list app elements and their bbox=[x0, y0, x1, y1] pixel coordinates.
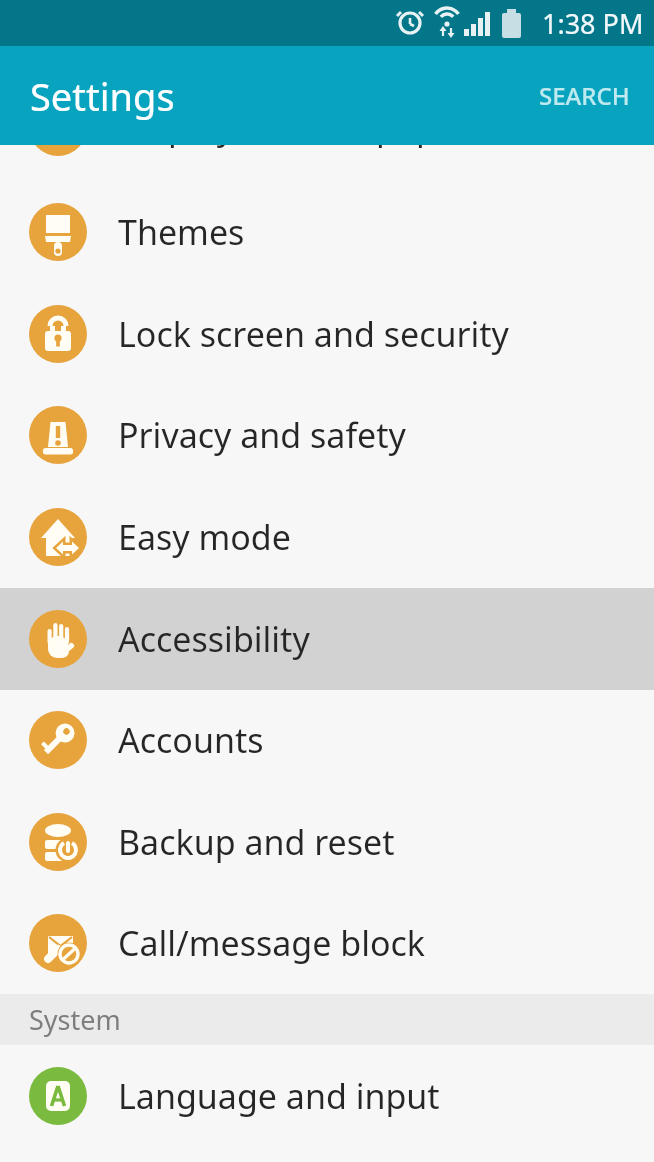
button[interactable]: Language and input bbox=[0, 1045, 654, 1147]
button[interactable]: Lock screen and security bbox=[0, 283, 654, 385]
button[interactable]: Call/message block bbox=[0, 892, 654, 994]
staticText: Language and input bbox=[118, 1073, 440, 1119]
button[interactable]: Accounts bbox=[0, 689, 654, 791]
staticText: Display and wallpaper bbox=[118, 145, 471, 150]
staticText: Themes bbox=[118, 209, 245, 255]
staticText: Backup and reset bbox=[118, 819, 395, 865]
button[interactable]: Accessibility bbox=[0, 588, 654, 690]
button[interactable]: Backup and reset bbox=[0, 791, 654, 893]
staticText: SEARCH bbox=[539, 79, 630, 112]
button[interactable]: Themes bbox=[0, 181, 654, 283]
staticText: 1:38 PM bbox=[542, 5, 644, 42]
staticText: System bbox=[29, 1001, 121, 1038]
button[interactable]: SEARCH bbox=[515, 46, 654, 145]
button[interactable]: Display and wallpaper bbox=[0, 145, 654, 178]
staticText: Easy mode bbox=[118, 514, 291, 560]
button[interactable]: Easy mode bbox=[0, 486, 654, 588]
staticText: Accessibility bbox=[118, 616, 310, 662]
staticText: Privacy and safety bbox=[118, 412, 406, 458]
button[interactable]: Privacy and safety bbox=[0, 384, 654, 486]
staticText: Settings bbox=[30, 70, 175, 122]
staticText: Call/message block bbox=[118, 920, 426, 966]
staticText: Accounts bbox=[118, 717, 264, 763]
staticText: Lock screen and security bbox=[118, 311, 509, 357]
